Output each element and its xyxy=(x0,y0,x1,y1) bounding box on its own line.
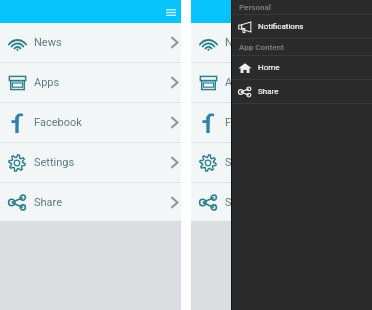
button[interactable]: Home xyxy=(232,56,372,79)
staticText: Personal xyxy=(239,3,271,12)
staticText: Share xyxy=(34,196,63,209)
button[interactable]: Share xyxy=(232,80,372,103)
staticText: Settings xyxy=(225,156,266,169)
button[interactable]: Apps xyxy=(0,63,181,102)
staticText: Share xyxy=(258,87,279,96)
staticText: Home xyxy=(258,63,280,72)
button[interactable]: Facebook xyxy=(191,103,372,142)
staticText: Facebook xyxy=(225,116,273,129)
button[interactable]: News xyxy=(0,23,181,62)
button[interactable]: Open navigation drawer xyxy=(355,5,369,19)
button[interactable]: News xyxy=(191,23,372,62)
button[interactable]: Notifications xyxy=(232,15,372,38)
staticText: App Content xyxy=(239,43,284,52)
button[interactable]: Facebook xyxy=(0,103,181,142)
staticText: Apps xyxy=(34,76,60,89)
staticText: News xyxy=(225,36,253,49)
staticText: Share xyxy=(225,196,254,209)
button[interactable]: Share xyxy=(0,183,181,221)
staticText: Settings xyxy=(34,156,75,169)
staticText: Notifications xyxy=(258,22,304,31)
button[interactable]: Share xyxy=(191,183,372,221)
button[interactable]: Apps xyxy=(191,63,372,102)
button[interactable]: Open navigation drawer xyxy=(164,5,178,19)
staticText: Facebook xyxy=(34,116,82,129)
button[interactable]: Settings xyxy=(191,143,372,182)
staticText: Apps xyxy=(225,76,251,89)
staticText: News xyxy=(34,36,62,49)
button[interactable]: Settings xyxy=(0,143,181,182)
